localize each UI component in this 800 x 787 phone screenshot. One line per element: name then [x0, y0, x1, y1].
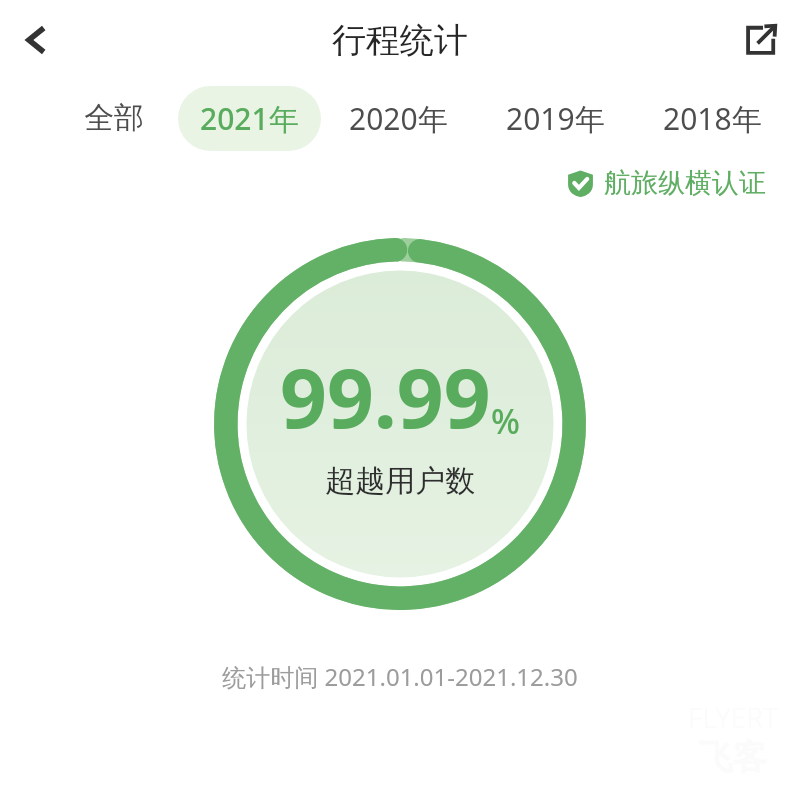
- button[interactable]: 航旅纵横认证: [567, 166, 766, 200]
- staticText: 行程统计: [332, 19, 468, 62]
- staticText: %: [491, 398, 520, 444]
- staticText: 2020年: [349, 98, 448, 139]
- staticText: 统计时间 2021.01.01-2021.12.30: [0, 660, 800, 693]
- staticText: 全部: [84, 99, 144, 137]
- button[interactable]: Back: [6, 9, 68, 71]
- staticText: 2021年: [200, 98, 299, 139]
- button[interactable]: Share: [730, 9, 792, 71]
- button[interactable]: 2018年: [641, 86, 784, 151]
- button[interactable]: 2020年: [327, 86, 470, 151]
- staticText: 超越用户数: [325, 462, 475, 500]
- button[interactable]: 2021年: [178, 86, 321, 151]
- staticText: 航旅纵横认证: [604, 166, 766, 200]
- staticText: 99.99: [280, 340, 491, 452]
- staticText: 2018年: [663, 98, 762, 139]
- button[interactable]: 2019年: [484, 86, 627, 151]
- staticText: 2019年: [506, 98, 605, 139]
- button[interactable]: 全部: [62, 87, 166, 149]
